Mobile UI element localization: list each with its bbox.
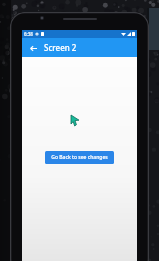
- button[interactable]: Back: [26, 41, 40, 55]
- staticText: Go Back to see changes: [51, 154, 108, 161]
- staticText: Screen 2: [44, 42, 77, 53]
- staticText: 6:38: [24, 31, 33, 37]
- button[interactable]: Go Back to see changes: [45, 151, 114, 164]
